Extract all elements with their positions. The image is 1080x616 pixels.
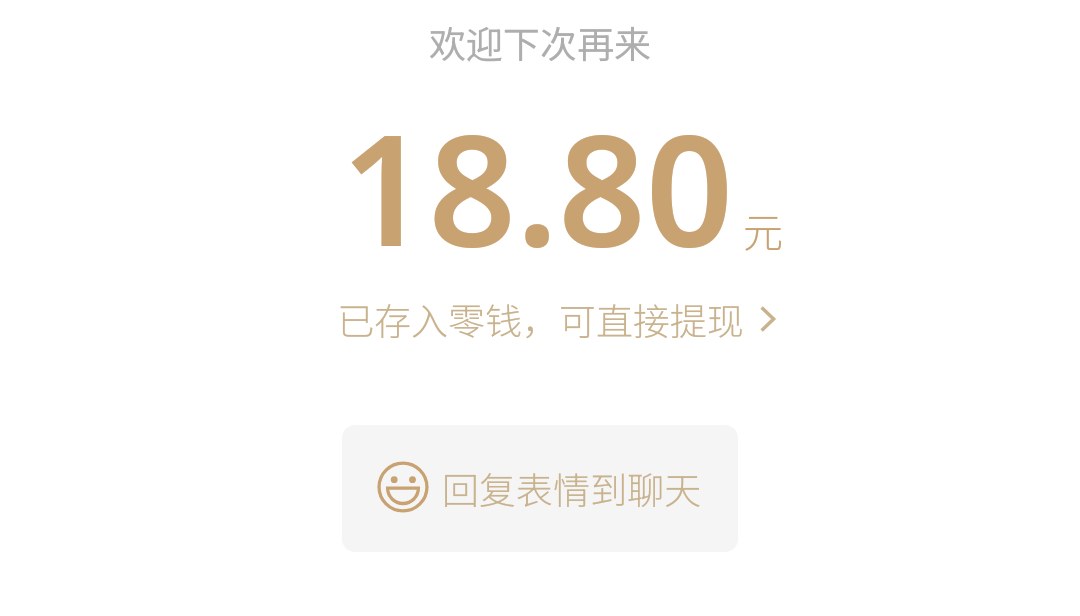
staticText: 已存入零钱，可直接提现 bbox=[337, 292, 744, 346]
staticText: 18.80 bbox=[341, 82, 734, 290]
button[interactable]: 查看零钱明细 bbox=[760, 306, 776, 334]
staticText: 欢迎下次再来 bbox=[429, 15, 651, 69]
button[interactable]: 回复表情到聊天 bbox=[342, 425, 738, 552]
button[interactable]: 已存入零钱，可直接提现 bbox=[337, 292, 744, 346]
staticText: 元 bbox=[743, 201, 783, 259]
staticText: 回复表情到聊天 bbox=[442, 461, 701, 515]
